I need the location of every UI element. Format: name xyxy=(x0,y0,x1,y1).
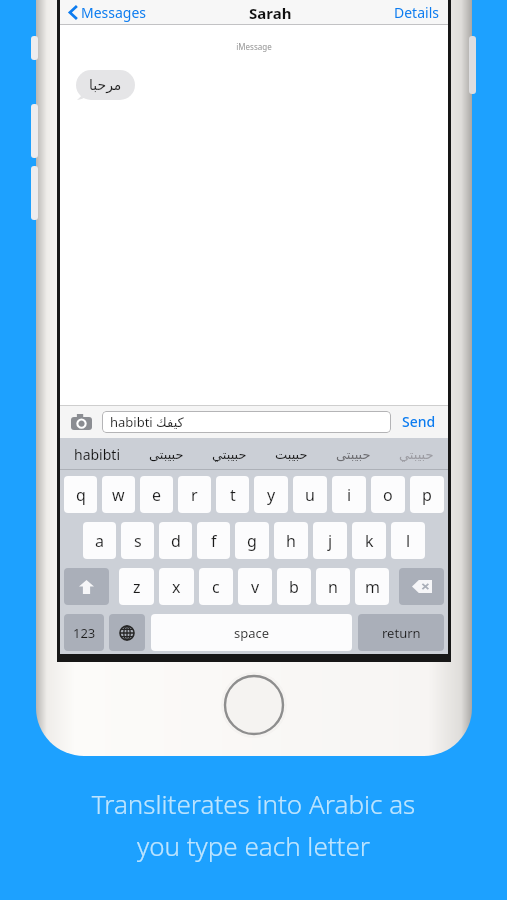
staticText: x xyxy=(172,576,181,598)
button[interactable]: q xyxy=(64,476,97,513)
staticText: q xyxy=(76,484,86,506)
staticText: b xyxy=(289,576,299,598)
staticText: a xyxy=(95,530,104,552)
staticText: s xyxy=(134,530,142,552)
button[interactable]: t xyxy=(216,476,249,513)
button[interactable]: m xyxy=(355,568,389,605)
button[interactable]: g xyxy=(235,522,269,559)
button[interactable]: return xyxy=(358,614,444,651)
button[interactable]: z xyxy=(119,568,154,605)
button[interactable]: p xyxy=(410,476,444,513)
staticText: o xyxy=(383,484,393,506)
staticText: space xyxy=(234,624,270,642)
button[interactable]: w xyxy=(102,476,135,513)
button[interactable]: x xyxy=(159,568,194,605)
staticText: habibti كيفك xyxy=(110,413,184,431)
staticText: حبيبتى xyxy=(336,447,371,462)
button[interactable]: Change keyboard xyxy=(109,614,145,651)
button[interactable]: حبيبتى xyxy=(149,447,184,462)
button[interactable]: حبيبتى xyxy=(336,447,371,462)
button[interactable]: Send xyxy=(400,408,438,435)
staticText: f xyxy=(211,530,217,552)
button[interactable]: d xyxy=(159,522,192,559)
staticText: return xyxy=(382,624,421,642)
staticText: i xyxy=(347,484,352,506)
button[interactable]: e xyxy=(140,476,173,513)
staticText: Send xyxy=(402,412,436,431)
button[interactable]: o xyxy=(371,476,405,513)
staticText: p xyxy=(422,484,432,506)
button[interactable]: k xyxy=(352,522,386,559)
button[interactable]: h xyxy=(274,522,308,559)
staticText: r xyxy=(191,484,198,506)
staticText: c xyxy=(212,576,220,598)
button[interactable]: Home xyxy=(221,672,287,738)
staticText: حبيبتي xyxy=(399,447,434,462)
button[interactable]: Camera xyxy=(70,411,92,433)
button[interactable]: r xyxy=(178,476,211,513)
staticText: 123 xyxy=(73,624,96,642)
button[interactable]: Shift xyxy=(64,568,109,605)
staticText: مرحبا xyxy=(89,77,122,93)
button[interactable]: j xyxy=(313,522,347,559)
button[interactable]: حبيبتي xyxy=(399,447,434,462)
staticText: l xyxy=(406,530,411,552)
staticText: g xyxy=(247,530,257,552)
button[interactable]: space xyxy=(151,614,352,651)
staticText: e xyxy=(152,484,162,506)
button[interactable]: Messages xyxy=(67,0,149,25)
button[interactable]: s xyxy=(121,522,154,559)
staticText: Sarah xyxy=(249,3,292,23)
staticText: m xyxy=(365,576,380,598)
staticText: حبيبتى xyxy=(149,447,184,462)
button[interactable]: n xyxy=(316,568,350,605)
button[interactable]: f xyxy=(197,522,230,559)
button[interactable]: i xyxy=(332,476,366,513)
staticText: حبيبتي xyxy=(212,447,247,462)
button[interactable]: b xyxy=(277,568,311,605)
button[interactable]: v xyxy=(238,568,272,605)
staticText: z xyxy=(133,576,141,598)
button[interactable]: habibti كيفك xyxy=(102,411,391,433)
staticText: Transliterates into Arabic as you type e… xyxy=(0,786,507,864)
button[interactable]: مرحبا xyxy=(76,70,135,100)
staticText: h xyxy=(286,530,296,552)
button[interactable]: l xyxy=(391,522,425,559)
button[interactable]: 123 xyxy=(64,614,104,651)
staticText: w xyxy=(112,484,125,506)
button[interactable]: u xyxy=(293,476,327,513)
staticText: Details xyxy=(394,3,439,22)
staticText: d xyxy=(171,530,181,552)
staticText: u xyxy=(305,484,315,506)
staticText: Messages xyxy=(81,3,147,22)
staticText: v xyxy=(251,576,260,598)
button[interactable]: حبيبت xyxy=(275,447,308,462)
button[interactable]: حبيبتي xyxy=(212,447,247,462)
staticText: y xyxy=(267,484,276,506)
button[interactable]: habibti xyxy=(74,445,121,464)
staticText: t xyxy=(230,484,236,506)
button[interactable]: y xyxy=(254,476,288,513)
staticText: k xyxy=(365,530,374,552)
staticText: حبيبت xyxy=(275,447,308,462)
button[interactable]: Delete xyxy=(399,568,444,605)
staticText: j xyxy=(328,530,333,552)
button[interactable]: Details xyxy=(392,0,441,25)
button[interactable]: a xyxy=(83,522,116,559)
staticText: iMessage xyxy=(60,41,448,52)
staticText: habibti xyxy=(74,445,121,464)
staticText: n xyxy=(328,576,338,598)
button[interactable]: c xyxy=(199,568,233,605)
